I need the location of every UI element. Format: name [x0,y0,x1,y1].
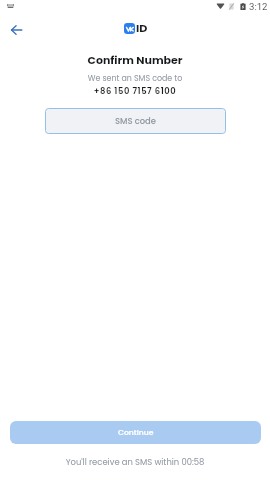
staticText: Confirm Number [0,52,270,67]
button[interactable]: Back [5,18,28,41]
staticText: SMS code [115,115,156,127]
staticText: We sent an SMS code to [0,73,270,84]
button[interactable]: SMS code [45,108,226,134]
staticText: +86 150 7157 6100 [0,85,270,97]
staticText: 3:12 [249,1,268,12]
staticText: ID [136,20,148,36]
staticText: Continue [118,427,154,438]
staticText: You'll receive an SMS within 00:58 [0,456,270,468]
button[interactable]: Continue [10,421,261,444]
